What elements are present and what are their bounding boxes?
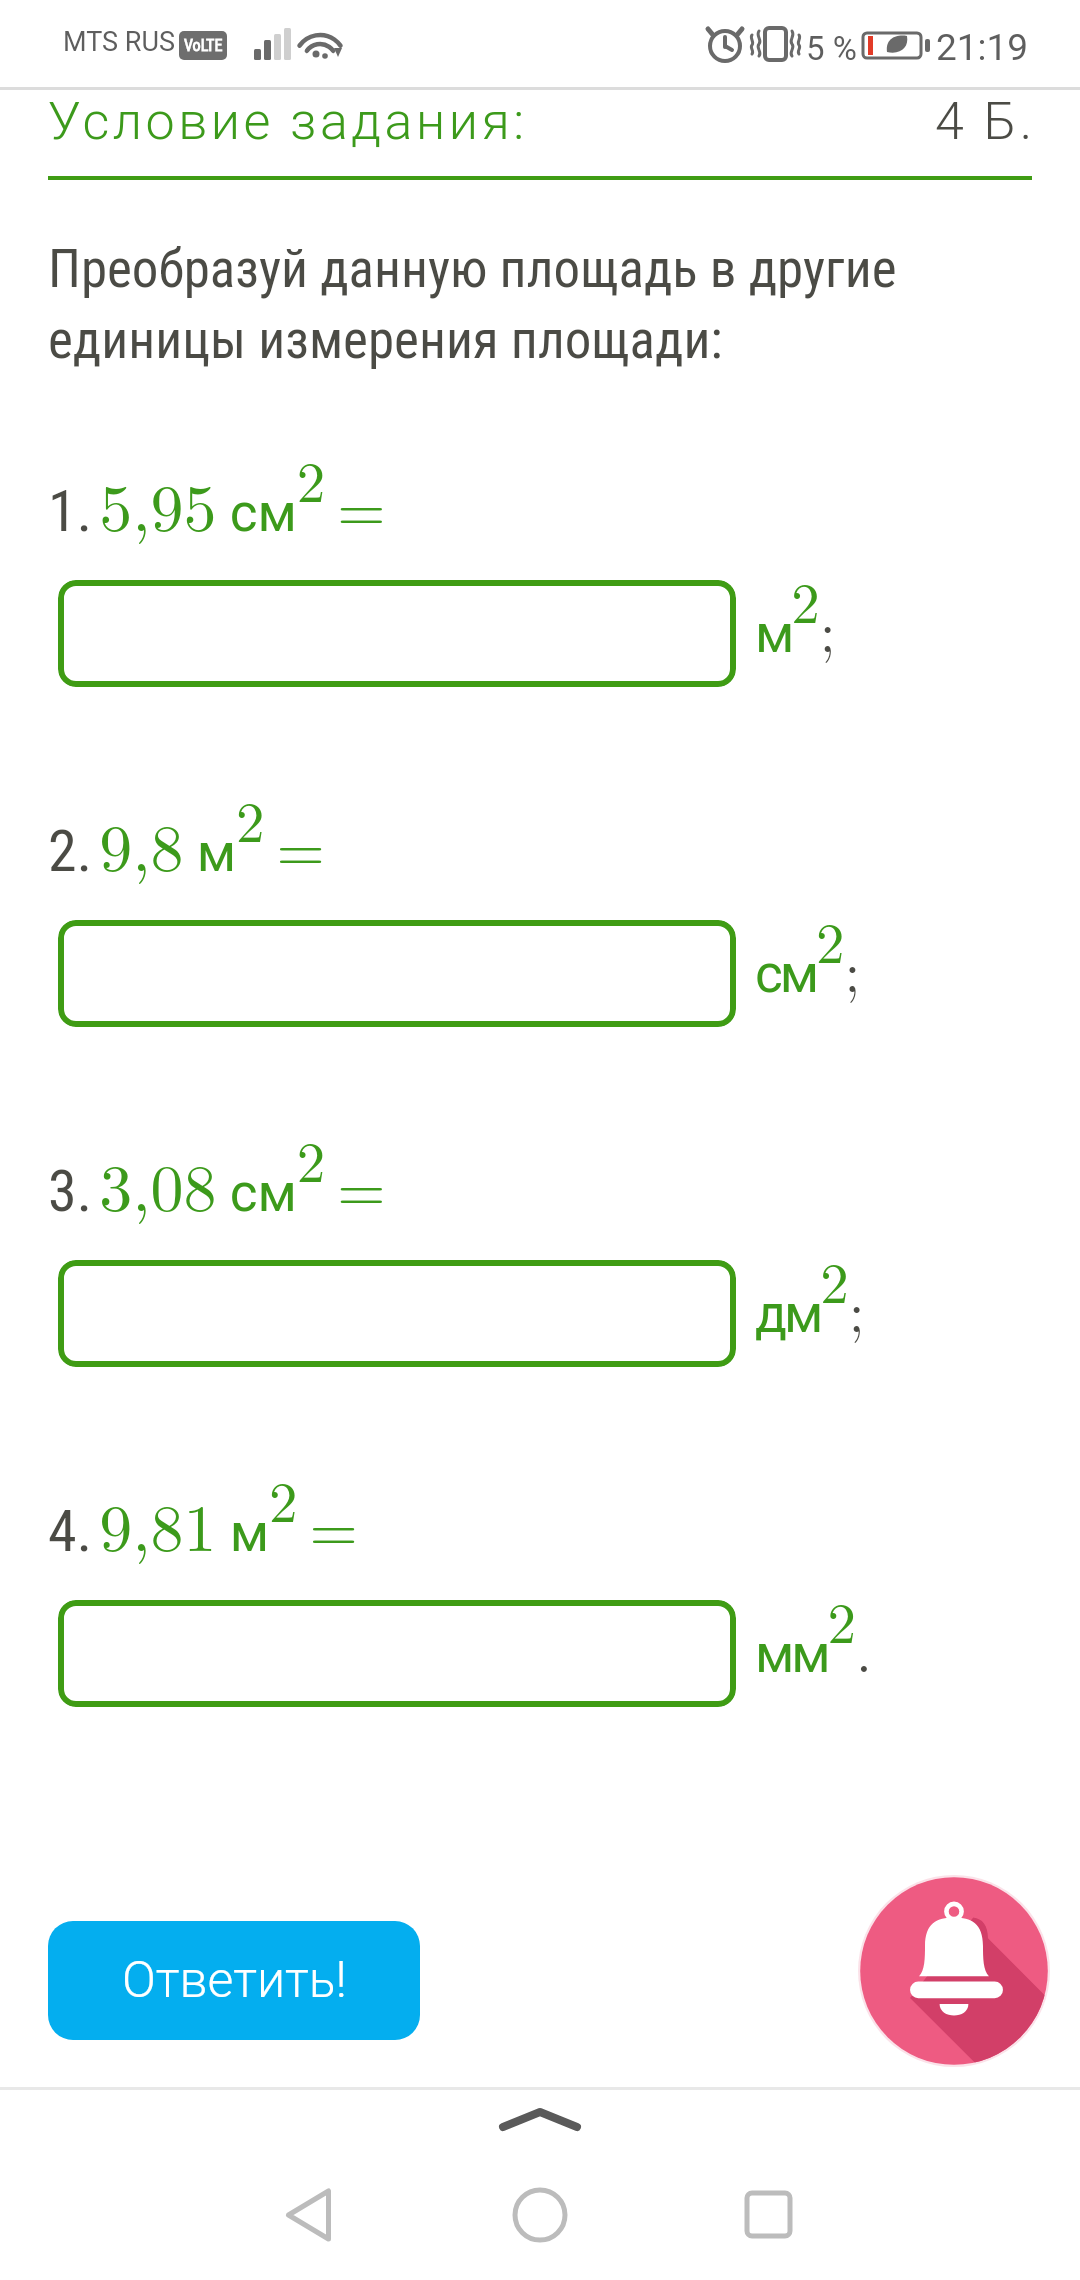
staticText: 3. 3,08 см2 = xyxy=(48,1118,386,1230)
button[interactable]: Back xyxy=(248,2175,368,2280)
button[interactable]: Show navigation bar xyxy=(480,2097,600,2147)
staticText: дм2; xyxy=(755,1239,865,1349)
staticText: 4 Б. xyxy=(935,91,1036,152)
button[interactable]: Ответить! xyxy=(48,1921,420,2040)
staticText: 4. 9,81 м2 = xyxy=(48,1458,358,1570)
button[interactable]: Answer field 4 xyxy=(58,1600,736,1707)
staticText: см2; xyxy=(755,899,861,1009)
staticText: 5 % xyxy=(806,29,857,68)
staticText: VoLTE xyxy=(184,36,223,55)
staticText: м2; xyxy=(755,559,836,669)
staticText: Условие задания: xyxy=(48,91,528,152)
button[interactable]: Recents xyxy=(708,2175,828,2280)
button[interactable]: Answer field 1 xyxy=(58,580,736,687)
staticText: 1. 5,95 см2 = xyxy=(48,438,386,550)
button[interactable]: Notifications xyxy=(858,1875,1050,2067)
button[interactable]: Home xyxy=(480,2175,600,2280)
staticText: 2. 9,8 м2 = xyxy=(48,778,325,890)
staticText: MTS RUS xyxy=(63,26,175,58)
button[interactable]: Answer field 3 xyxy=(58,1260,736,1367)
staticText: Ответить! xyxy=(122,1951,347,2010)
staticText: мм2. xyxy=(755,1579,872,1689)
button[interactable]: Answer field 2 xyxy=(58,920,736,1027)
staticText: 21:19 xyxy=(936,26,1029,69)
staticText: Преобразуй данную площадь в другие едини… xyxy=(48,238,897,371)
